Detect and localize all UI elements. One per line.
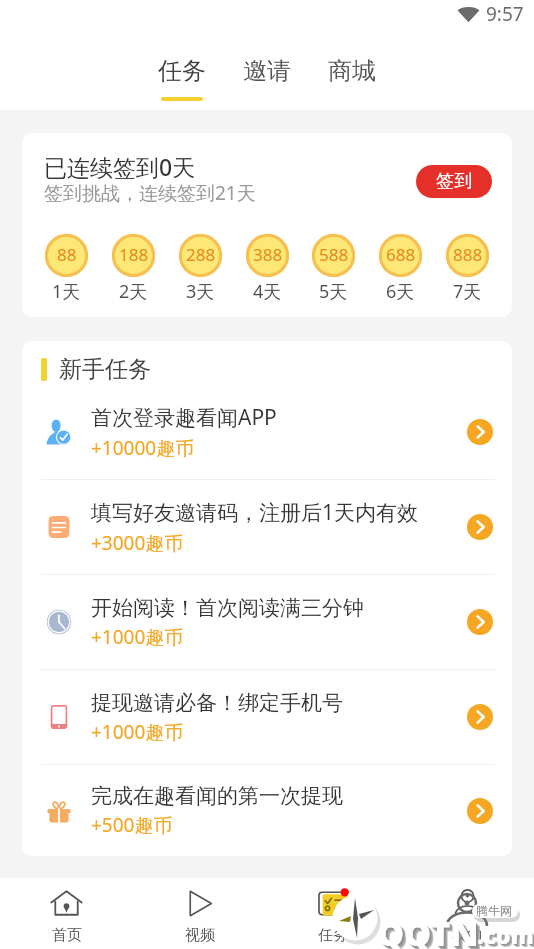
staticText: 新手任务 bbox=[59, 355, 151, 384]
staticText: QQTN bbox=[377, 910, 479, 949]
button[interactable]: 288 bbox=[178, 233, 223, 278]
staticText: QQTN bbox=[380, 913, 482, 949]
staticText: 588 bbox=[319, 243, 349, 266]
staticText: 完成在趣看闻的第一次提现 bbox=[91, 783, 343, 809]
staticText: +10000趣币 bbox=[91, 435, 195, 461]
staticText: 签到挑战，连续签到21天 bbox=[44, 180, 256, 206]
staticText: QQTN bbox=[378, 911, 480, 949]
staticText: 邀请 bbox=[243, 56, 291, 86]
button[interactable]: 视频 bbox=[133, 878, 266, 949]
staticText: 我的 bbox=[452, 926, 482, 945]
button[interactable]: 签到 bbox=[416, 165, 492, 198]
button[interactable]: Go bbox=[467, 514, 493, 540]
staticText: 2天 bbox=[119, 279, 148, 304]
button[interactable]: 我的 bbox=[400, 878, 534, 949]
staticText: 已连续签到0天 bbox=[44, 151, 196, 182]
staticText: 888 bbox=[453, 243, 483, 266]
staticText: 任务 bbox=[318, 926, 348, 945]
staticText: 视频 bbox=[185, 926, 215, 945]
staticText: 7天 bbox=[453, 279, 482, 304]
staticText: +1000趣币 bbox=[91, 719, 184, 745]
staticText: 任务 bbox=[158, 56, 206, 86]
button[interactable]: 填写好友邀请码，注册后1天内有效 bbox=[22, 480, 512, 574]
button[interactable]: 开始阅读！首次阅读满三分钟 bbox=[22, 575, 512, 669]
button[interactable]: 任务 bbox=[266, 878, 400, 949]
button[interactable]: 邀请 bbox=[243, 27, 291, 101]
button[interactable]: 588 bbox=[311, 233, 356, 278]
button[interactable]: 首次登录趣看闻APP bbox=[22, 385, 512, 479]
button[interactable]: 商城 bbox=[328, 27, 376, 101]
button[interactable]: Go bbox=[467, 798, 493, 824]
staticText: 商城 bbox=[328, 56, 376, 86]
staticText: 3天 bbox=[186, 279, 215, 304]
staticText: 9:57 bbox=[486, 1, 524, 27]
button[interactable]: 188 bbox=[111, 233, 156, 278]
staticText: 1天 bbox=[52, 279, 81, 304]
staticText: QQTN bbox=[379, 912, 481, 949]
staticText: 4天 bbox=[253, 279, 282, 304]
staticText: .com bbox=[479, 921, 534, 949]
button[interactable]: Go bbox=[467, 419, 493, 445]
staticText: 首页 bbox=[52, 926, 82, 945]
staticText: +500趣币 bbox=[91, 812, 173, 838]
staticText: 188 bbox=[119, 243, 149, 266]
button[interactable]: Go bbox=[467, 609, 493, 635]
staticText: 88 bbox=[57, 243, 77, 266]
button[interactable]: 388 bbox=[245, 233, 290, 278]
staticText: 688 bbox=[386, 243, 416, 266]
staticText: .com bbox=[480, 922, 534, 949]
button[interactable]: 任务 bbox=[158, 27, 206, 101]
staticText: 填写好友邀请码，注册后1天内有效 bbox=[91, 498, 419, 527]
staticText: 提现邀请必备！绑定手机号 bbox=[91, 690, 343, 716]
staticText: +3000趣币 bbox=[91, 530, 184, 556]
button[interactable]: 88 bbox=[44, 233, 89, 278]
staticText: .com bbox=[478, 920, 534, 949]
staticText: 腾牛网 bbox=[476, 903, 512, 918]
button[interactable]: 完成在趣看闻的第一次提现 bbox=[22, 765, 512, 856]
staticText: 6天 bbox=[386, 279, 415, 304]
button[interactable]: 888 bbox=[445, 233, 490, 278]
staticText: 开始阅读！首次阅读满三分钟 bbox=[91, 595, 364, 621]
button[interactable]: 688 bbox=[378, 233, 423, 278]
button[interactable]: 提现邀请必备！绑定手机号 bbox=[22, 670, 512, 764]
staticText: 签到 bbox=[436, 170, 472, 193]
button[interactable]: Go bbox=[467, 704, 493, 730]
staticText: QQTN bbox=[381, 914, 483, 949]
staticText: 388 bbox=[253, 243, 283, 266]
button[interactable]: 首页 bbox=[0, 878, 133, 949]
staticText: .com bbox=[477, 919, 534, 949]
staticText: 首次登录趣看闻APP bbox=[91, 403, 277, 432]
staticText: +1000趣币 bbox=[91, 624, 184, 650]
staticText: 288 bbox=[186, 243, 216, 266]
staticText: 5天 bbox=[319, 279, 348, 304]
